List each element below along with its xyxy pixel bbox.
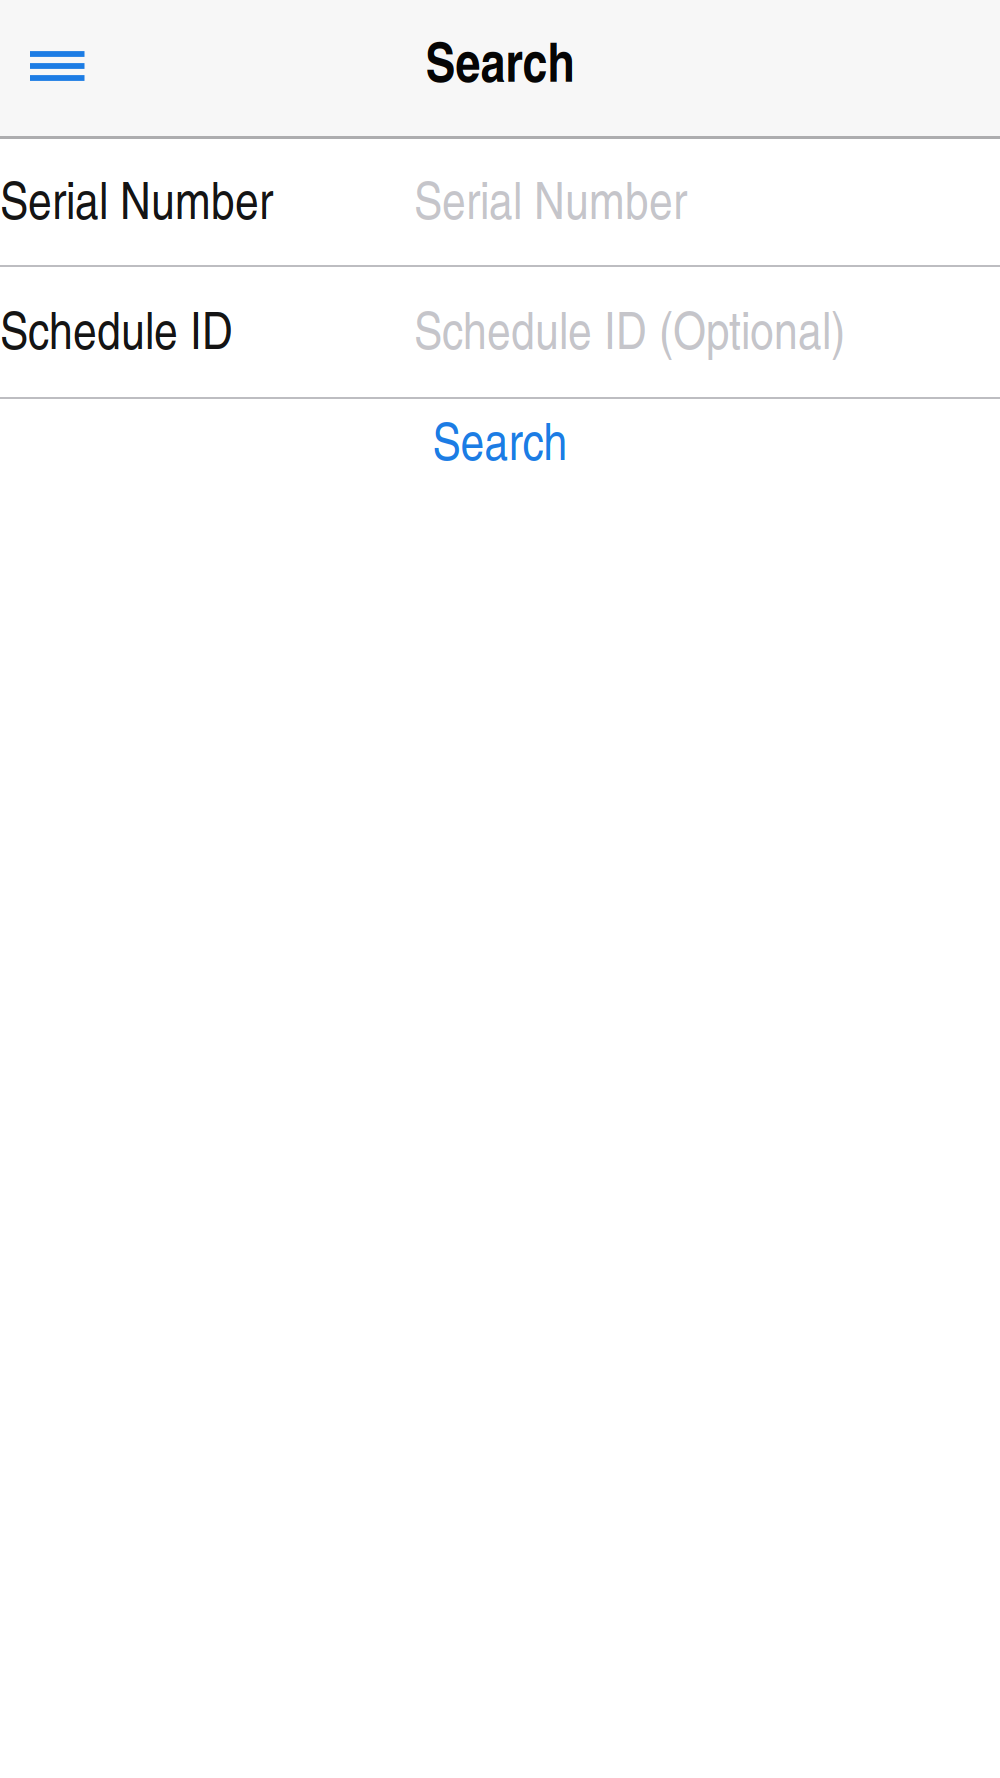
button[interactable]: Schedule ID <box>0 267 1000 397</box>
staticText: Schedule ID (Optional) <box>414 292 845 364</box>
staticText: Schedule ID <box>0 292 233 364</box>
staticText: Search <box>432 403 567 475</box>
button[interactable]: Serial Number <box>0 139 1000 265</box>
button[interactable]: Menu <box>0 0 140 136</box>
staticText: Serial Number <box>414 162 687 234</box>
button[interactable]: Search <box>0 399 1000 487</box>
staticText: Serial Number <box>0 162 273 234</box>
staticText: Search <box>425 21 574 99</box>
